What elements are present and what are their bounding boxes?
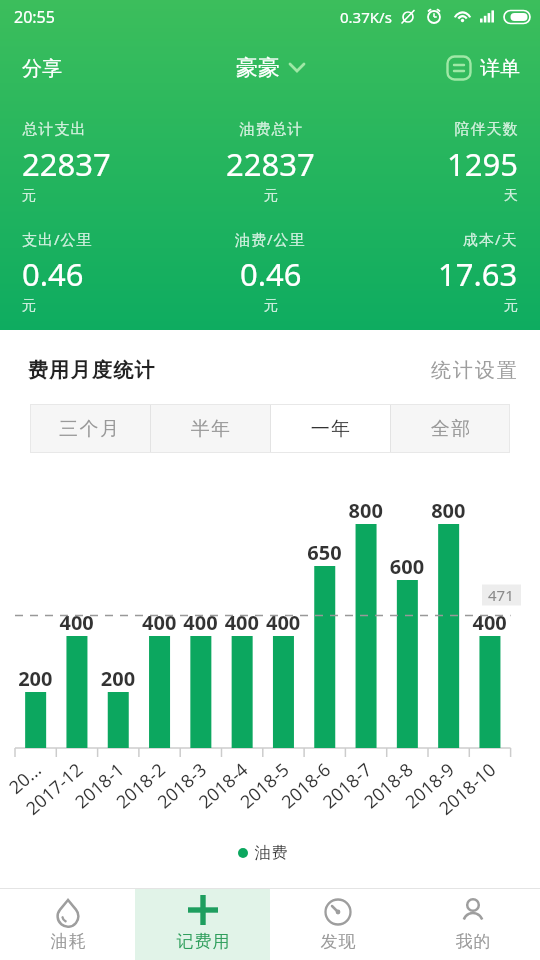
button[interactable]: 三个月	[30, 404, 150, 453]
staticText: 元	[264, 297, 278, 315]
staticText: 我的	[455, 931, 491, 952]
button[interactable]: 一年	[271, 404, 390, 453]
staticText: 半年	[190, 417, 231, 441]
staticText: 20:55	[14, 6, 55, 28]
staticText: 全部	[430, 417, 471, 441]
staticText: 17.63	[438, 253, 518, 295]
staticText: 0.46	[22, 253, 84, 295]
staticText: 油费/公里	[235, 229, 306, 249]
button[interactable]: 油耗	[0, 889, 135, 960]
button[interactable]: 全部	[391, 404, 510, 453]
staticText: 费用月度统计	[28, 358, 156, 383]
staticText: 陪伴天数	[454, 120, 518, 139]
staticText: 总计支出	[22, 120, 86, 139]
staticText: 统计设置	[430, 358, 518, 383]
staticText: 三个月	[59, 417, 121, 441]
staticText: 油费	[254, 843, 288, 863]
staticText: 支出/公里	[22, 229, 93, 249]
button[interactable]: 统计设置	[430, 358, 518, 383]
button[interactable]: 详单	[438, 47, 540, 89]
button[interactable]: 我的	[405, 889, 540, 960]
staticText: 0.37K/s	[340, 7, 392, 27]
staticText: 22837	[22, 143, 111, 185]
staticText: 豪豪	[236, 54, 280, 82]
staticText: 元	[504, 297, 518, 315]
staticText: 详单	[480, 56, 520, 81]
staticText: 天	[504, 187, 518, 205]
staticText: 发现	[320, 931, 356, 952]
staticText: 元	[264, 187, 278, 205]
button[interactable]: 记费用	[135, 889, 270, 960]
staticText: 22837	[226, 143, 315, 185]
staticText: 油耗	[50, 931, 86, 952]
button[interactable]: 发现	[270, 889, 405, 960]
staticText: 分享	[22, 56, 62, 81]
button[interactable]: 分享	[0, 48, 70, 89]
staticText: 0.46	[240, 253, 302, 295]
staticText: 油费总计	[239, 120, 303, 139]
staticText: 1295	[447, 143, 518, 185]
button[interactable]: 半年	[151, 404, 270, 453]
staticText: 记费用	[176, 931, 230, 952]
staticText: 元	[22, 187, 36, 205]
staticText: 一年	[310, 417, 351, 441]
staticText: 成本/天	[463, 229, 518, 249]
staticText: 元	[22, 297, 36, 315]
button[interactable]: 豪豪	[228, 46, 313, 90]
